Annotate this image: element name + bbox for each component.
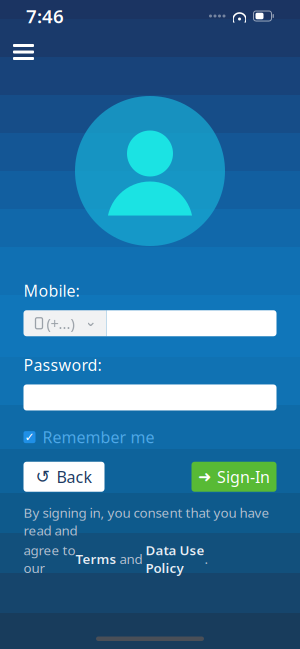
staticText: Password: xyxy=(23,354,101,375)
button[interactable]: Data Use Policy xyxy=(145,541,204,577)
staticText: Back xyxy=(56,466,92,487)
staticText: Mobile: xyxy=(23,280,79,301)
staticText: ↺ xyxy=(35,467,50,487)
staticText: ✓ xyxy=(24,430,34,444)
staticText: Data Use Policy xyxy=(145,541,204,577)
staticText: By signing in, you consent that you have… xyxy=(23,504,269,539)
button[interactable]: ➜ xyxy=(191,462,276,492)
staticText: 7:46 xyxy=(26,4,64,28)
staticText: (+...) xyxy=(46,313,74,333)
staticText: agree to our xyxy=(23,541,75,577)
button[interactable]: Menu xyxy=(7,38,40,66)
staticText: . xyxy=(204,550,208,568)
button[interactable]: Country code xyxy=(23,310,106,336)
button[interactable]: ↺ xyxy=(23,462,104,492)
staticText: ➜ xyxy=(198,468,211,486)
staticText: Sign-In xyxy=(217,466,270,487)
staticText: Remember me xyxy=(42,426,154,448)
staticText: and xyxy=(116,550,145,568)
button[interactable]: Terms xyxy=(75,550,116,568)
staticText: ⌄ xyxy=(84,313,96,329)
button[interactable]: ✓ xyxy=(23,426,154,448)
staticText: Terms xyxy=(75,550,116,568)
